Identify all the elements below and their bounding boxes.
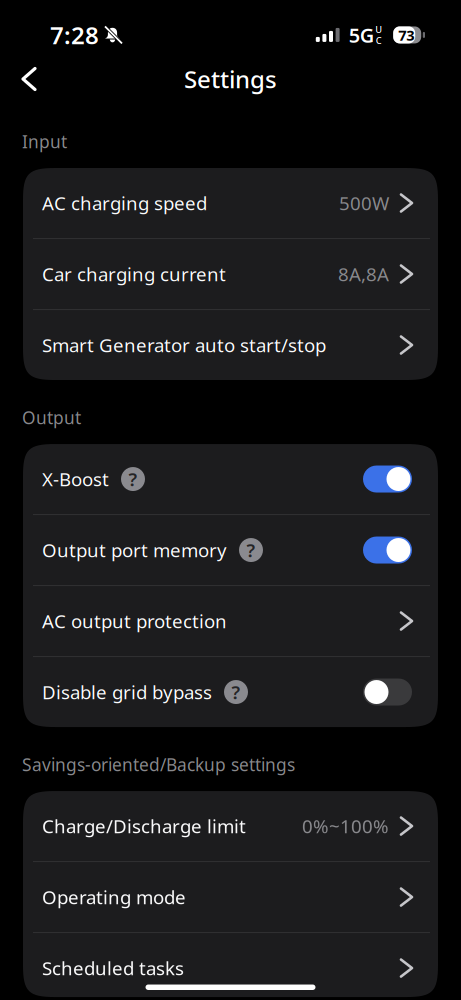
staticText: Car charging current — [42, 262, 226, 286]
staticText: Input — [22, 130, 67, 153]
staticText: X-Boost — [42, 467, 109, 491]
staticText: Savings-oriented/Backup settings — [22, 753, 295, 776]
staticText: Output — [22, 406, 81, 429]
staticText: U — [375, 23, 382, 36]
staticText: Disable grid bypass — [42, 680, 212, 704]
staticText: ? — [128, 467, 137, 491]
staticText: 8A,8A — [338, 262, 389, 286]
button[interactable]: Disable grid bypass — [23, 657, 438, 727]
staticText: 5G — [349, 22, 375, 48]
staticText: 7:28 — [50, 19, 99, 51]
staticText: C — [376, 34, 382, 47]
staticText: 0%~100% — [302, 814, 389, 838]
button[interactable]: AC output protection — [23, 586, 438, 656]
button[interactable]: Operating mode — [23, 862, 438, 932]
staticText: 500W — [339, 191, 389, 215]
button[interactable]: Car charging current — [23, 239, 438, 309]
staticText: Smart Generator auto start/stop — [42, 333, 326, 357]
staticText: Scheduled tasks — [42, 956, 184, 980]
button[interactable]: Scheduled tasks — [23, 933, 438, 1000]
button[interactable]: Back — [12, 58, 46, 99]
staticText: AC charging speed — [42, 191, 207, 215]
button[interactable]: Smart Generator auto start/stop — [23, 310, 438, 380]
staticText: AC output protection — [42, 609, 227, 633]
button[interactable]: Charge/Discharge limit — [23, 791, 438, 861]
button[interactable]: X-Boost — [23, 444, 438, 514]
staticText: ? — [246, 538, 255, 562]
staticText: Charge/Discharge limit — [42, 814, 246, 838]
button[interactable]: Output port memory — [23, 515, 438, 585]
staticText: Output port memory — [42, 538, 227, 562]
staticText: ? — [231, 680, 240, 704]
staticText: Settings — [184, 63, 277, 95]
button[interactable]: AC charging speed — [23, 168, 438, 238]
staticText: 73 — [398, 25, 414, 45]
staticText: Operating mode — [42, 885, 186, 909]
